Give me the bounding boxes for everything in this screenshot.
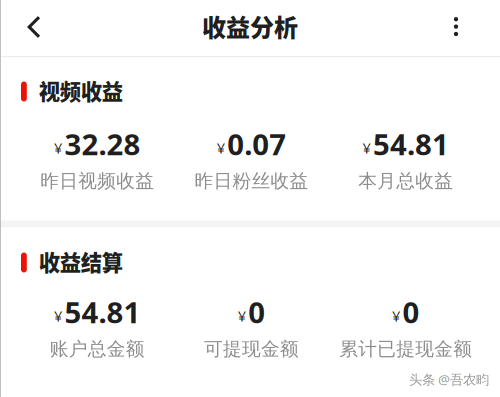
staticText: 收益结算: [39, 246, 123, 277]
staticText: 视频收益: [39, 75, 123, 106]
button[interactable]: ¥: [174, 124, 329, 192]
staticText: 头条 @吾农畇: [409, 370, 489, 388]
button[interactable]: ¥: [174, 292, 329, 360]
button[interactable]: ¥: [20, 292, 174, 360]
staticText: 32.28: [64, 124, 140, 163]
staticText: ¥: [363, 138, 371, 157]
staticText: ¥: [217, 138, 225, 157]
staticText: 昨日视频收益: [40, 169, 154, 192]
staticText: ¥: [238, 306, 246, 325]
staticText: 0.07: [227, 124, 286, 163]
staticText: 0: [403, 292, 420, 331]
staticText: 昨日粉丝收益: [194, 169, 308, 192]
staticText: ¥: [392, 306, 400, 325]
staticText: ¥: [54, 138, 62, 157]
button[interactable]: ¥: [20, 124, 174, 192]
staticText: 0: [248, 292, 265, 331]
staticText: 累计已提现金额: [339, 337, 472, 360]
staticText: 收益分析: [202, 9, 298, 43]
staticText: 54.81: [64, 292, 140, 331]
button[interactable]: 返回: [11, 2, 57, 54]
staticText: ¥: [54, 306, 62, 325]
staticText: 账户总金额: [50, 337, 145, 360]
staticText: 54.81: [373, 124, 449, 163]
button[interactable]: 更多: [433, 2, 479, 54]
button[interactable]: ¥: [329, 124, 483, 192]
staticText: 可提现金额: [204, 337, 299, 360]
staticText: 本月总收益: [358, 169, 453, 192]
button[interactable]: ¥: [329, 292, 483, 360]
